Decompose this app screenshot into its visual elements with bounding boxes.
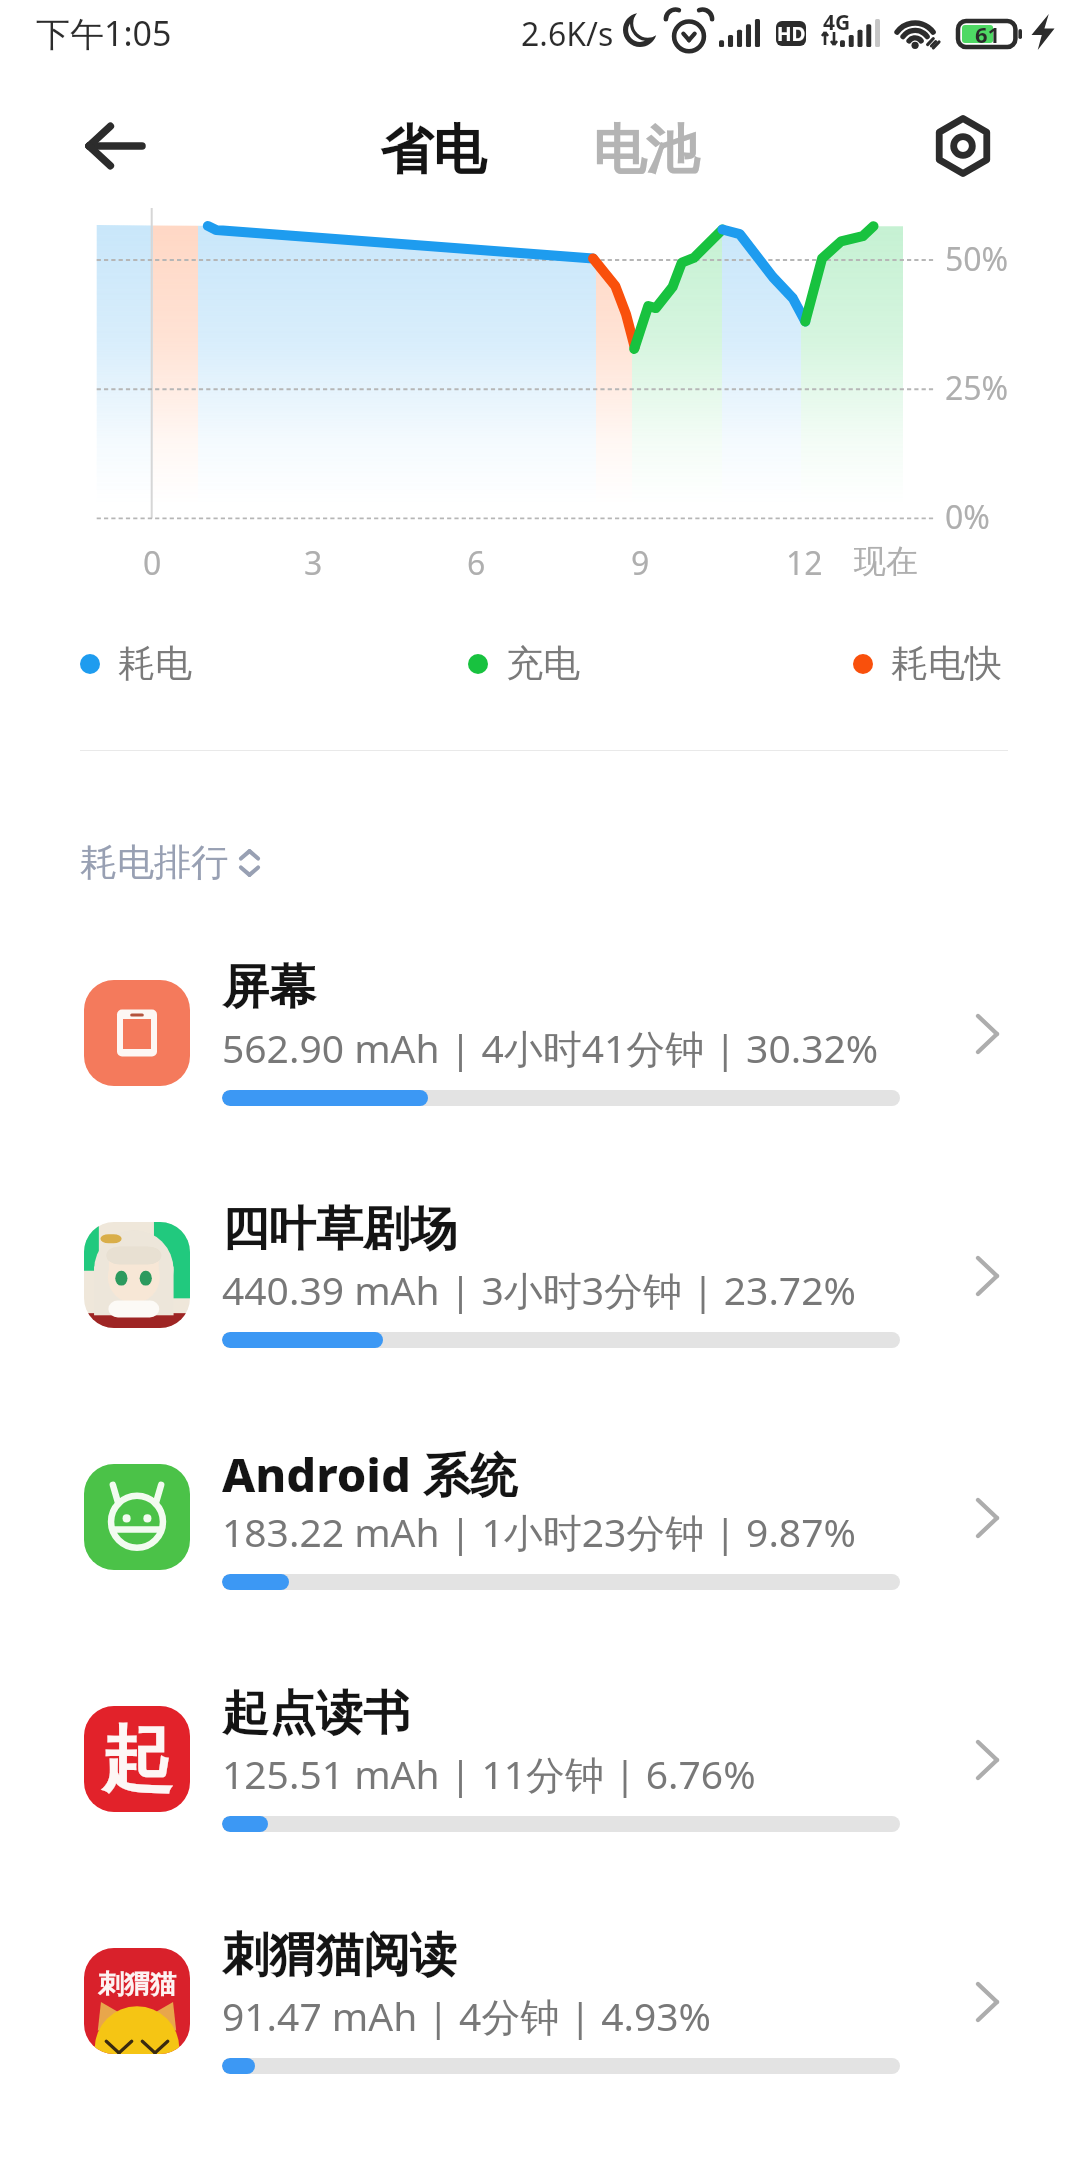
staticText: 起 <box>101 1715 173 1806</box>
staticText: Android 系统 <box>222 1442 518 1506</box>
staticText: 省电 <box>380 117 486 184</box>
staticText: 充电 <box>506 640 580 687</box>
staticText: 0 <box>143 541 162 585</box>
button[interactable]: 耗电快 <box>853 640 1002 687</box>
staticText: 0% <box>945 495 990 539</box>
staticText: 183.22 mAh | 1小时23分钟 | 9.87% <box>222 1505 856 1558</box>
button[interactable]: 省电 <box>366 105 500 196</box>
button[interactable]: 耗电排行 <box>80 839 260 886</box>
staticText: 现在 <box>854 541 918 581</box>
button[interactable]: Android 系统 <box>40 1412 1040 1612</box>
staticText: 四叶草剧场 <box>222 1200 457 1259</box>
button[interactable]: 四叶草剧场 <box>40 1170 1040 1370</box>
staticText: 12 <box>786 541 823 585</box>
staticText: 61 <box>975 19 1001 49</box>
button[interactable]: 屏幕 <box>40 928 1040 1128</box>
staticText: 562.90 mAh | 4小时41分钟 | 30.32% <box>222 1021 879 1074</box>
staticText: 刺猬猫 <box>98 1968 176 2001</box>
staticText: 刺猬猫阅读 <box>222 1926 457 1985</box>
staticText: 125.51 mAh | 11分钟 | 6.76% <box>222 1747 756 1800</box>
staticText: 50% <box>945 237 1009 281</box>
button[interactable]: Back <box>73 104 157 188</box>
staticText: 9 <box>631 541 650 585</box>
staticText: 下午1:05 <box>36 10 172 56</box>
button[interactable]: 耗电 <box>80 640 192 687</box>
button[interactable]: 电池 <box>579 105 713 196</box>
button[interactable]: Settings <box>921 104 1005 188</box>
staticText: 3 <box>304 541 323 585</box>
staticText: 440.39 mAh | 3小时3分钟 | 23.72% <box>222 1263 856 1316</box>
staticText: 电池 <box>593 117 699 184</box>
staticText: 起点读书 <box>222 1684 410 1743</box>
staticText: 6 <box>467 541 486 585</box>
staticText: 耗电快 <box>891 640 1002 687</box>
staticText: 耗电排行 <box>80 839 228 886</box>
staticText: 91.47 mAh | 4分钟 | 4.93% <box>222 1989 711 2042</box>
staticText: 2.6K/s <box>521 12 614 56</box>
staticText: 屏幕 <box>222 958 316 1017</box>
staticText: 25% <box>945 366 1009 410</box>
button[interactable]: 充电 <box>468 640 580 687</box>
button[interactable]: 刺猬猫 <box>40 1896 1040 2096</box>
staticText: HD <box>777 21 806 46</box>
staticText: 4G <box>823 8 851 37</box>
staticText: 耗电 <box>118 640 192 687</box>
button[interactable]: 起 <box>40 1654 1040 1854</box>
